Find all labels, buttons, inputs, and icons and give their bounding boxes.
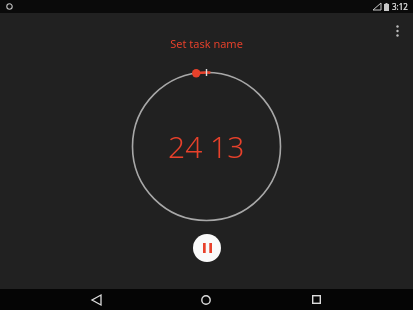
staticText: 24 13 bbox=[168, 126, 245, 167]
button[interactable]: Recents bbox=[299, 289, 333, 310]
button[interactable]: Set task name bbox=[162, 34, 251, 53]
button[interactable]: Pause bbox=[193, 234, 221, 262]
staticText: 3:12 bbox=[392, 1, 408, 12]
button[interactable]: More options bbox=[383, 17, 411, 45]
button[interactable]: Back bbox=[79, 289, 113, 310]
staticText: Set task name bbox=[170, 36, 243, 51]
button[interactable]: Home bbox=[189, 289, 223, 310]
